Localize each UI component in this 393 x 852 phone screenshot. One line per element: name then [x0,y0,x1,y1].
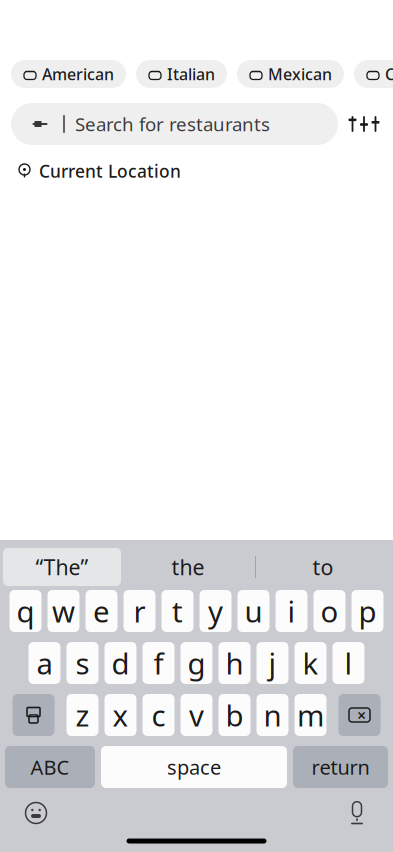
button[interactable]: Back [27,111,53,137]
staticText: p [358,591,376,630]
button[interactable]: the [121,548,255,586]
button[interactable]: m [294,694,326,736]
button[interactable]: Shift [12,694,54,736]
button[interactable]: Filters [348,108,380,140]
staticText: d [111,643,129,682]
button[interactable]: r [123,590,155,632]
staticText: to [312,553,333,581]
button[interactable]: x [104,694,136,736]
staticText: x [112,695,128,734]
staticText: n [263,695,281,734]
button[interactable]: Delete [338,694,380,736]
button[interactable]: q [9,590,41,632]
button[interactable]: c [142,694,174,736]
staticText: the [171,553,204,581]
button[interactable]: j [256,642,288,684]
button[interactable]: return [293,746,388,788]
staticText: Search for restaurants [75,112,270,136]
staticText: c [151,695,165,734]
staticText: × [357,704,366,726]
button[interactable]: Chinese [354,60,393,88]
staticText: “The” [35,553,88,581]
button[interactable]: b [218,694,250,736]
button[interactable]: o [313,590,345,632]
button[interactable]: e [85,590,117,632]
button[interactable]: y [199,590,231,632]
button[interactable]: l [332,642,364,684]
staticText: return [311,754,369,780]
staticText: s [75,643,89,682]
staticText: y [208,591,223,630]
button[interactable]: n [256,694,288,736]
staticText: u [244,591,262,630]
button[interactable]: Dictation [340,796,374,830]
staticText: q [16,591,34,630]
button[interactable]: v [180,694,212,736]
button[interactable]: Current Location [0,158,393,184]
button[interactable]: f [142,642,174,684]
button[interactable]: i [275,590,307,632]
staticText: r [133,591,145,630]
button[interactable]: p [351,590,383,632]
staticText: Current Location [39,159,181,182]
button[interactable]: “The” [3,548,121,586]
button[interactable]: American [11,60,126,88]
staticText: h [225,643,243,682]
staticText: m [297,695,324,734]
staticText: j [268,643,276,682]
staticText: Italian [167,63,215,85]
staticText: i [287,591,295,630]
button[interactable]: a [28,642,60,684]
staticText: v [189,695,204,734]
button[interactable]: g [180,642,212,684]
staticText: ABC [30,754,69,780]
button[interactable]: s [66,642,98,684]
button[interactable]: w [47,590,79,632]
button[interactable]: u [237,590,269,632]
staticText: e [93,591,110,630]
button[interactable]: Mexican [237,60,344,88]
staticText: space [167,754,221,780]
staticText: f [153,643,163,682]
button[interactable]: to [256,548,390,586]
button[interactable]: h [218,642,250,684]
button[interactable]: k [294,642,326,684]
staticText: l [344,643,352,682]
staticText: Chinese [385,63,393,85]
button[interactable]: d [104,642,136,684]
staticText: g [187,643,205,682]
button[interactable]: Emoji [19,796,53,830]
button[interactable]: ABC [5,746,95,788]
staticText: w [52,591,75,630]
staticText: k [302,643,318,682]
staticText: Mexican [268,63,332,85]
staticText: o [320,591,338,630]
staticText: t [172,591,183,630]
staticText: American [42,63,114,85]
button[interactable]: t [161,590,193,632]
button[interactable]: z [66,694,98,736]
button[interactable]: space [101,746,287,788]
button[interactable]: Italian [136,60,227,88]
staticText: a [36,643,52,682]
staticText: z [75,695,89,734]
staticText: b [225,695,243,734]
